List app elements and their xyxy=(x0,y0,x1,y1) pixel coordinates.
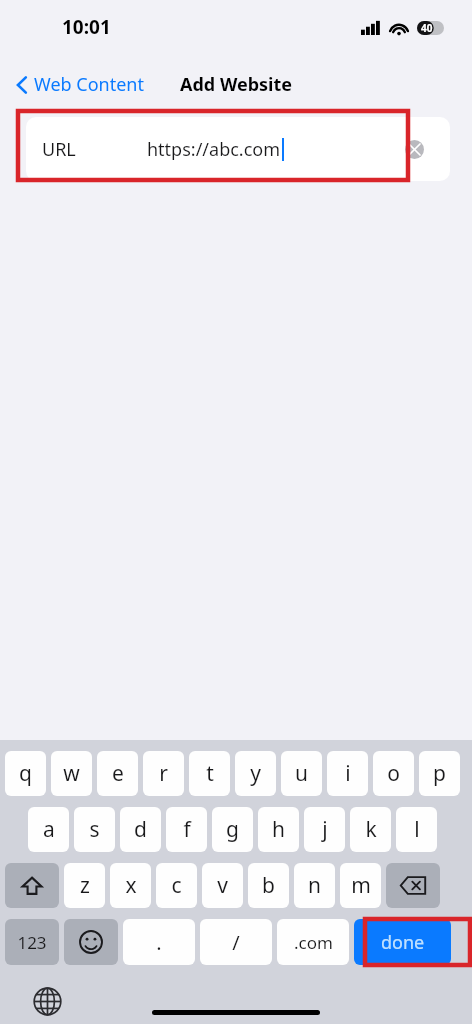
button[interactable]: t xyxy=(189,751,230,796)
staticText: y xyxy=(250,759,261,788)
button[interactable]: g xyxy=(212,807,253,852)
button[interactable]: l xyxy=(396,807,437,852)
staticText: v xyxy=(217,871,228,900)
staticText: f xyxy=(183,815,191,844)
staticText: n xyxy=(308,871,321,900)
button[interactable]: b xyxy=(248,863,289,908)
button[interactable]: f xyxy=(166,807,207,852)
staticText: c xyxy=(171,871,182,900)
staticText: x xyxy=(125,871,137,900)
button[interactable]: p xyxy=(419,751,460,796)
staticText: 10:01 xyxy=(62,14,111,40)
staticText: u xyxy=(295,759,308,788)
staticText: r xyxy=(159,759,168,788)
staticText: URL xyxy=(42,137,76,162)
staticText: m xyxy=(351,871,371,900)
staticText: h xyxy=(272,815,285,844)
button[interactable]: k xyxy=(350,807,391,852)
button[interactable]: u xyxy=(281,751,322,796)
button[interactable]: c xyxy=(156,863,197,908)
button[interactable]: Backspace xyxy=(386,863,440,908)
button[interactable]: y xyxy=(235,751,276,796)
button[interactable]: n xyxy=(294,863,335,908)
staticText: . xyxy=(156,929,162,956)
button[interactable]: r xyxy=(143,751,184,796)
button[interactable]: z xyxy=(64,863,105,908)
button[interactable]: .com xyxy=(277,919,349,965)
button[interactable]: Web Content xyxy=(12,68,148,101)
staticText: b xyxy=(262,871,275,900)
staticText: Add Website xyxy=(180,72,293,97)
button[interactable]: q xyxy=(5,751,46,796)
button[interactable]: / xyxy=(200,919,272,965)
staticText: w xyxy=(63,759,80,788)
staticText: k xyxy=(365,815,377,844)
button[interactable]: done xyxy=(354,919,451,965)
button[interactable]: s xyxy=(74,807,115,852)
button[interactable]: a xyxy=(28,807,69,852)
button[interactable]: j xyxy=(304,807,345,852)
staticText: o xyxy=(387,759,400,788)
staticText: .com xyxy=(294,931,333,954)
button[interactable]: 123 xyxy=(5,919,59,965)
staticText: j xyxy=(322,815,328,844)
button[interactable]: Emoji xyxy=(64,919,118,965)
staticText: 40 xyxy=(421,21,433,35)
button[interactable]: v xyxy=(202,863,243,908)
button[interactable]: Shift xyxy=(5,863,59,908)
staticText: s xyxy=(89,815,100,844)
staticText: l xyxy=(414,815,420,844)
staticText: https://abc.com xyxy=(147,137,281,162)
button[interactable]: h xyxy=(258,807,299,852)
button[interactable]: d xyxy=(120,807,161,852)
button[interactable]: Clear text xyxy=(405,140,424,159)
staticText: p xyxy=(433,759,446,788)
button[interactable]: m xyxy=(340,863,381,908)
staticText: a xyxy=(43,815,55,844)
button[interactable]: URL xyxy=(26,117,450,181)
button[interactable]: o xyxy=(373,751,414,796)
button[interactable]: w xyxy=(51,751,92,796)
staticText: i xyxy=(345,759,351,788)
staticText: e xyxy=(112,759,124,788)
staticText: g xyxy=(226,815,239,844)
staticText: d xyxy=(134,815,147,844)
button[interactable]: Change keyboard language xyxy=(30,984,64,1018)
button[interactable]: e xyxy=(97,751,138,796)
staticText: 123 xyxy=(17,931,47,954)
staticText: q xyxy=(19,759,32,788)
staticText: / xyxy=(232,929,240,956)
button[interactable]: x xyxy=(110,863,151,908)
staticText: z xyxy=(80,871,90,900)
button[interactable]: . xyxy=(123,919,195,965)
button[interactable]: i xyxy=(327,751,368,796)
staticText: t xyxy=(206,759,214,788)
staticText: done xyxy=(381,930,425,955)
staticText: Web Content xyxy=(34,72,144,97)
